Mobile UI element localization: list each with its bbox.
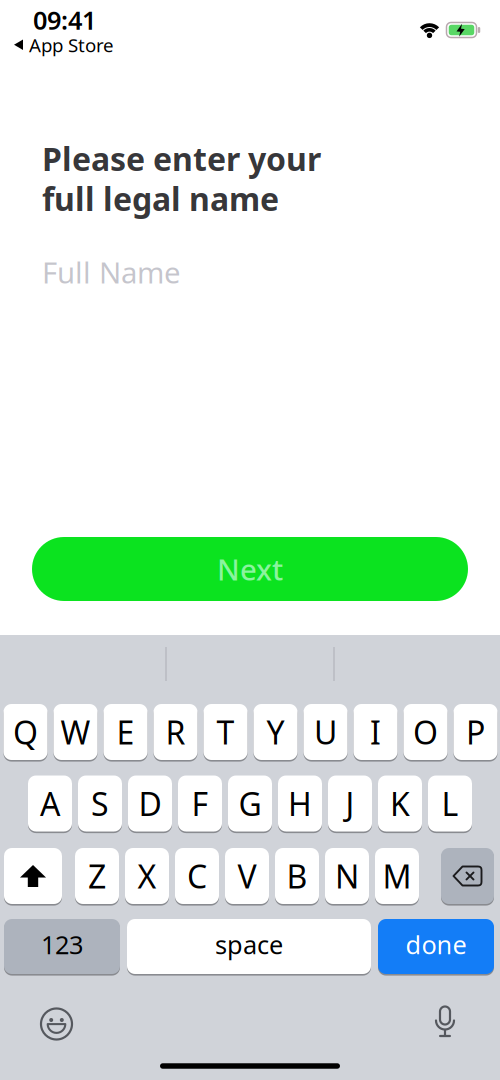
button[interactable]: W: [53, 703, 97, 761]
staticText: N: [335, 855, 359, 897]
staticText: W: [60, 711, 90, 753]
button[interactable]: I: [353, 703, 397, 761]
staticText: done: [405, 928, 466, 961]
button[interactable]: P: [453, 703, 497, 761]
staticText: 09:41: [33, 3, 96, 37]
button[interactable]: S: [78, 774, 122, 832]
button[interactable]: Next: [32, 537, 468, 601]
staticText: I: [370, 711, 381, 753]
staticText: D: [138, 782, 161, 825]
button[interactable]: A: [28, 774, 72, 832]
button[interactable]: O: [403, 703, 447, 761]
staticText: space: [215, 928, 283, 961]
staticText: Full Name: [42, 252, 181, 291]
button[interactable]: U: [303, 703, 347, 761]
button[interactable]: M: [375, 847, 419, 905]
staticText: V: [237, 855, 256, 897]
staticText: Next: [217, 549, 283, 588]
staticText: K: [390, 782, 410, 825]
staticText: Z: [88, 855, 106, 897]
button[interactable]: L: [428, 774, 472, 832]
staticText: R: [165, 711, 185, 753]
button[interactable]: V: [225, 847, 269, 905]
staticText: O: [413, 711, 438, 753]
button[interactable]: 123: [4, 918, 120, 975]
button[interactable]: X: [125, 847, 169, 905]
staticText: X: [137, 855, 156, 897]
button[interactable]: R: [153, 703, 197, 761]
button[interactable]: Z: [75, 847, 119, 905]
staticText: E: [116, 711, 134, 753]
staticText: T: [216, 711, 234, 753]
staticText: H: [288, 782, 312, 825]
button[interactable]: F: [178, 774, 222, 832]
staticText: Q: [13, 711, 38, 753]
staticText: B: [286, 855, 307, 897]
staticText: M: [382, 855, 411, 897]
button[interactable]: Dictation: [431, 1006, 459, 1037]
staticText: S: [91, 782, 109, 825]
staticText: C: [187, 855, 207, 897]
staticText: Y: [266, 711, 284, 753]
button[interactable]: B: [275, 847, 319, 905]
button[interactable]: Y: [253, 703, 297, 761]
button[interactable]: D: [128, 774, 172, 832]
staticText: full legal name: [42, 177, 279, 220]
button[interactable]: Q: [3, 703, 47, 761]
button[interactable]: C: [175, 847, 219, 905]
staticText: A: [40, 782, 60, 825]
staticText: U: [314, 711, 337, 753]
staticText: Please enter your: [42, 137, 321, 180]
button[interactable]: G: [228, 774, 272, 832]
button[interactable]: App Store: [14, 33, 144, 57]
button[interactable]: Delete: [441, 847, 494, 905]
button[interactable]: T: [203, 703, 247, 761]
button[interactable]: done: [378, 918, 494, 975]
staticText: L: [441, 782, 458, 825]
staticText: 123: [41, 928, 83, 961]
staticText: G: [238, 782, 261, 825]
button[interactable]: K: [378, 774, 422, 832]
button[interactable]: J: [328, 774, 372, 832]
staticText: J: [345, 782, 354, 825]
button[interactable]: H: [278, 774, 322, 832]
staticText: P: [466, 711, 485, 753]
button[interactable]: space: [127, 918, 371, 975]
button[interactable]: Shift: [4, 847, 62, 905]
button[interactable]: N: [325, 847, 369, 905]
staticText: F: [191, 782, 208, 825]
staticText: App Store: [29, 33, 114, 57]
button[interactable]: Full Name: [42, 252, 458, 291]
button[interactable]: E: [103, 703, 147, 761]
button[interactable]: Emoji: [41, 1008, 72, 1039]
